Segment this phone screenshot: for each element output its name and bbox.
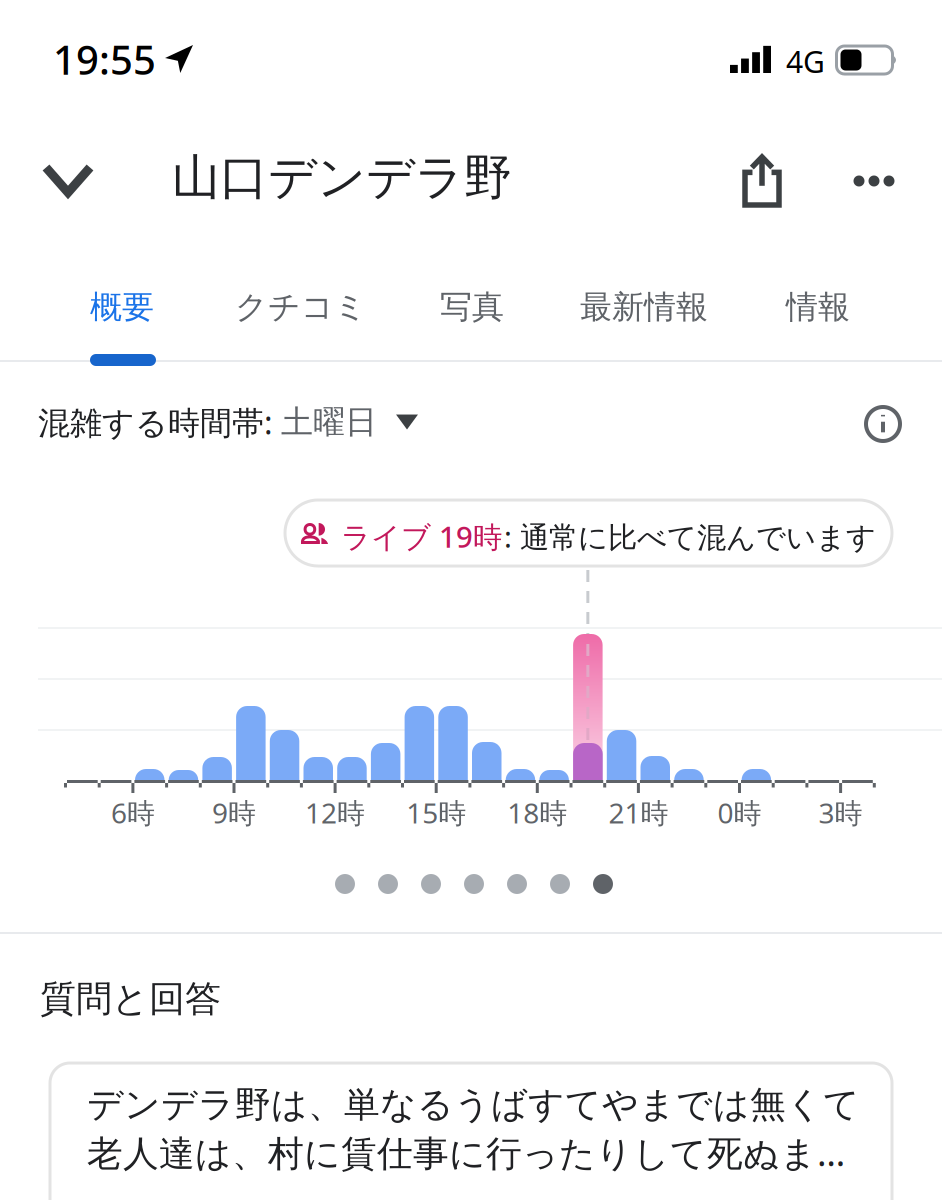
- button[interactable]: 木曜日: [507, 874, 527, 894]
- button[interactable]: 水曜日: [464, 874, 484, 894]
- button[interactable]: 金曜日: [550, 874, 570, 894]
- staticText: 6時: [111, 794, 155, 831]
- button[interactable]: 概要: [76, 266, 168, 348]
- staticText: 4G: [786, 41, 825, 82]
- staticText: 15時: [406, 794, 466, 831]
- staticText: 9時: [212, 794, 256, 831]
- staticText: 21時: [608, 794, 668, 831]
- staticText: : 通常に比べて混んでいます: [504, 517, 876, 556]
- staticText: 概要: [90, 287, 154, 327]
- button[interactable]: 閉じる: [18, 130, 118, 230]
- button[interactable]: 写真: [426, 266, 518, 348]
- button[interactable]: 混雑する時間帯:: [30, 387, 437, 457]
- staticText: 山口デンデラ野: [172, 148, 512, 207]
- staticText: 最新情報: [580, 287, 708, 327]
- button[interactable]: 最新情報: [566, 266, 722, 348]
- staticText: 質問と回答: [40, 977, 221, 1021]
- button[interactable]: 火曜日: [421, 874, 441, 894]
- button[interactable]: 情報: [772, 266, 864, 348]
- staticText: ライブ 19時: [341, 517, 502, 556]
- staticText: 写真: [440, 287, 504, 327]
- button[interactable]: 土曜日: [593, 874, 613, 894]
- staticText: 18時: [507, 794, 567, 831]
- button[interactable]: その他: [824, 131, 924, 231]
- staticText: 3時: [819, 794, 863, 831]
- button[interactable]: 共有: [712, 131, 812, 231]
- button[interactable]: 詳細情報: [843, 384, 923, 464]
- button[interactable]: デンデラ野は、単なるうばすてやまでは無くて: [50, 1063, 892, 1200]
- button[interactable]: 日曜日: [335, 874, 355, 894]
- staticText: 情報: [786, 287, 850, 327]
- staticText: 混雑する時間帯:: [38, 401, 281, 443]
- staticText: クチコミ: [235, 287, 367, 327]
- button[interactable]: 月曜日: [378, 874, 398, 894]
- staticText: 12時: [305, 794, 365, 831]
- staticText: 19:55: [53, 32, 156, 86]
- staticText: デンデラ野は、単なるうばすてやまでは無くて: [87, 1082, 860, 1127]
- staticText: 0時: [717, 794, 761, 831]
- staticText: 老人達は、村に賃仕事に行ったりして死ぬま…: [87, 1128, 845, 1177]
- staticText: 土曜日: [281, 402, 377, 442]
- button[interactable]: クチコミ: [221, 266, 381, 348]
